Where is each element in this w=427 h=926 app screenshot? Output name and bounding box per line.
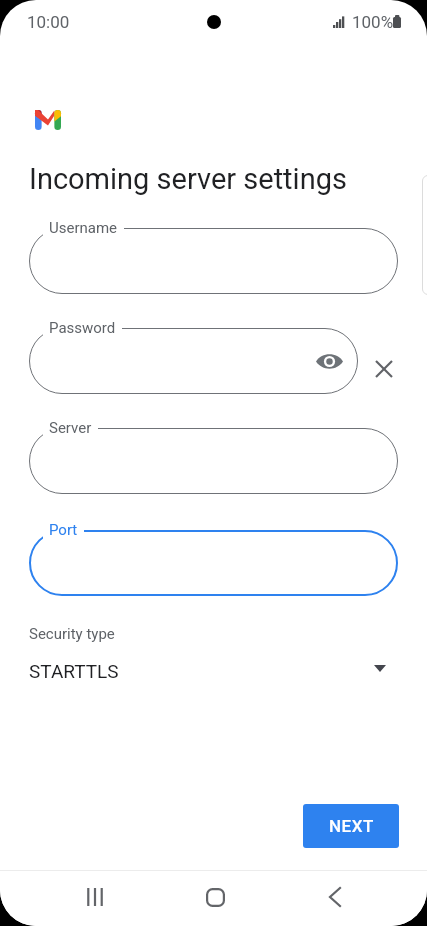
staticText: Security type [29, 625, 115, 643]
button[interactable]: STARTTLS [0, 654, 427, 688]
button[interactable]: Clear [358, 328, 410, 394]
button[interactable]: Port [29, 530, 398, 596]
button[interactable]: NEXT [303, 804, 399, 848]
staticText: Server [49, 419, 92, 437]
staticText: Incoming server settings [29, 162, 347, 196]
staticText: 10:00 [27, 12, 70, 32]
button[interactable]: Server [29, 428, 398, 494]
staticText: 100% [352, 12, 394, 32]
staticText: Username [49, 219, 118, 237]
button[interactable]: Username [29, 228, 398, 294]
staticText: NEXT [329, 816, 374, 836]
button[interactable]: Recent apps [34, 871, 155, 923]
staticText: Port [49, 521, 78, 539]
button[interactable]: Password [29, 328, 358, 394]
button[interactable]: Show password [309, 341, 349, 381]
button[interactable]: Home [155, 871, 275, 923]
staticText: STARTTLS [29, 660, 119, 682]
button[interactable]: Back [275, 871, 395, 923]
staticText: Password [49, 319, 116, 337]
